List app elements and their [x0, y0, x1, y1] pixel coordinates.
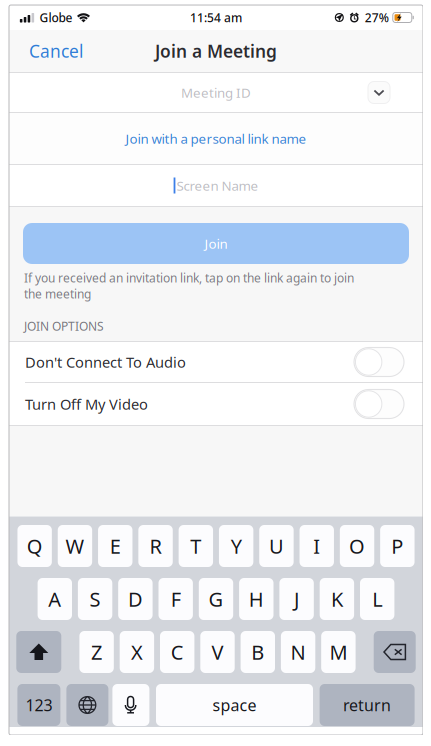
button[interactable]: Join with a personal link name: [9, 113, 423, 164]
staticText: B: [251, 639, 264, 665]
button[interactable]: J: [279, 578, 314, 620]
button[interactable]: R: [138, 525, 173, 567]
staticText: F: [171, 586, 181, 612]
staticText: Globe: [39, 9, 72, 25]
button[interactable]: Don't Connect To Audio: [9, 342, 423, 382]
button[interactable]: Y: [219, 525, 253, 567]
button[interactable]: Q: [17, 525, 52, 567]
button[interactable]: U: [259, 525, 294, 567]
staticText: L: [372, 586, 382, 612]
button[interactable]: Join: [23, 223, 409, 264]
staticText: 27%: [365, 9, 389, 25]
staticText: Z: [91, 639, 102, 665]
staticText: O: [349, 533, 365, 559]
staticText: JOIN OPTIONS: [24, 318, 104, 334]
button[interactable]: return: [320, 684, 415, 726]
button[interactable]: B: [241, 631, 275, 673]
staticText: 11:54 am: [190, 9, 242, 25]
button[interactable]: Next keyboard: [66, 684, 108, 726]
staticText: D: [128, 586, 143, 612]
button[interactable]: Shift: [16, 631, 61, 673]
staticText: return: [343, 694, 391, 716]
staticText: T: [190, 533, 201, 559]
staticText: A: [48, 586, 61, 612]
staticText: N: [291, 639, 306, 665]
button[interactable]: S: [78, 578, 112, 620]
button[interactable]: Dictation: [112, 684, 149, 726]
button[interactable]: G: [199, 578, 233, 620]
staticText: U: [269, 533, 284, 559]
button[interactable]: P: [380, 525, 415, 567]
staticText: J: [294, 586, 299, 612]
button[interactable]: V: [200, 631, 235, 673]
staticText: Join: [204, 235, 227, 252]
button[interactable]: I: [300, 525, 334, 567]
button[interactable]: Z: [79, 631, 114, 673]
button[interactable]: 123: [17, 684, 60, 726]
staticText: Join with a personal link name: [125, 130, 306, 147]
staticText: H: [249, 586, 264, 612]
button[interactable]: C: [160, 631, 194, 673]
button[interactable]: Delete: [374, 631, 416, 673]
staticText: C: [171, 639, 184, 665]
button[interactable]: X: [120, 631, 154, 673]
staticText: G: [208, 586, 223, 612]
button[interactable]: W: [58, 525, 92, 567]
staticText: Turn Off My Video: [25, 394, 148, 414]
staticText: M: [329, 639, 347, 665]
staticText: Y: [231, 533, 242, 559]
staticText: 123: [25, 694, 52, 716]
staticText: Q: [27, 533, 43, 559]
button[interactable]: Cancel: [9, 29, 103, 72]
staticText: P: [391, 533, 403, 559]
staticText: If you received an invitation link, tap …: [24, 270, 354, 302]
staticText: Meeting ID: [181, 84, 251, 101]
button[interactable]: T: [179, 525, 213, 567]
button[interactable]: Turn Off My Video: [9, 383, 423, 425]
staticText: Screen Name: [176, 177, 258, 194]
button[interactable]: L: [360, 578, 394, 620]
button[interactable]: M: [321, 631, 356, 673]
staticText: K: [331, 586, 343, 612]
button[interactable]: F: [158, 578, 193, 620]
staticText: Join a Meeting: [155, 39, 277, 62]
staticText: Don't Connect To Audio: [25, 352, 186, 372]
staticText: R: [150, 533, 162, 559]
staticText: E: [110, 533, 121, 559]
button[interactable]: E: [98, 525, 132, 567]
button[interactable]: D: [118, 578, 153, 620]
staticText: X: [131, 639, 143, 665]
staticText: V: [211, 639, 223, 665]
button[interactable]: N: [281, 631, 315, 673]
staticText: S: [90, 586, 101, 612]
button[interactable]: O: [340, 525, 374, 567]
button[interactable]: A: [38, 578, 72, 620]
staticText: W: [65, 533, 84, 559]
button[interactable]: H: [239, 578, 273, 620]
button[interactable]: Meeting ID: [9, 73, 423, 112]
staticText: Cancel: [29, 39, 83, 62]
staticText: I: [313, 533, 320, 559]
button[interactable]: space: [156, 684, 313, 726]
staticText: space: [212, 694, 256, 716]
button[interactable]: K: [320, 578, 354, 620]
